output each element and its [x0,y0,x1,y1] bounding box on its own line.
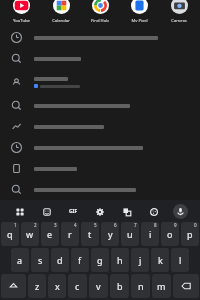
button[interactable]: l [171,248,189,272]
staticText: u [127,228,133,240]
staticText: d [57,254,63,266]
staticText: o [167,228,173,240]
staticText: GIF [69,208,78,215]
staticText: b [117,280,123,292]
staticText: YouTube [13,18,30,22]
staticText: My Pixel [131,18,148,22]
button[interactable]: Theme [146,204,161,219]
button[interactable]: Voice input [173,204,188,219]
staticText: v [96,280,101,292]
button[interactable]: x [48,274,66,298]
staticText: Camera [171,18,187,22]
staticText: 0 [194,222,197,228]
button[interactable]: Camera [161,0,197,22]
staticText: a [17,254,23,266]
staticText: w [26,228,34,240]
button[interactable]: s [31,248,49,272]
button[interactable] [0,179,200,200]
button[interactable]: y [101,222,119,246]
button[interactable]: w [21,222,39,246]
staticText: Calendar [52,18,70,22]
staticText: q [7,228,13,240]
staticText: n [138,280,144,292]
button[interactable]: h [111,248,129,272]
button[interactable]: d [51,248,69,272]
staticText: 2 [34,222,37,228]
button[interactable]: Translate [119,204,134,219]
staticText: z [35,280,40,292]
button[interactable]: p [181,222,199,246]
staticText: y [108,228,113,240]
staticText: i [149,228,152,240]
button[interactable]: r [61,222,79,246]
button[interactable] [0,116,200,137]
staticText: c [75,280,80,292]
staticText: 6 [114,222,117,228]
button[interactable]: GIF [66,204,80,218]
button[interactable]: Find Hub [82,0,118,22]
button[interactable]: My Pixel [121,0,157,22]
button[interactable] [0,158,200,179]
button[interactable]: a [11,248,29,272]
button[interactable]: t [81,222,99,246]
staticText: 3 [54,222,57,228]
button[interactable]: b [110,274,129,298]
button[interactable]: u [121,222,139,246]
staticText: l [179,254,182,266]
staticText: 4 [74,222,77,228]
staticText: k [158,254,163,266]
button[interactable] [0,48,200,69]
staticText: p [187,228,193,240]
button[interactable]: YouTube [3,0,39,22]
staticText: e [47,228,53,240]
button[interactable]: Apps [12,204,27,219]
button[interactable]: j [131,248,149,272]
button[interactable]: Stickers [39,204,54,219]
button[interactable]: Settings [92,204,107,219]
button[interactable]: e [41,222,59,246]
staticText: x [55,280,60,292]
button[interactable] [0,69,200,95]
staticText: 8 [154,222,157,228]
button[interactable]: Backspace [173,274,199,298]
button[interactable]: m [152,274,171,298]
button[interactable]: v [89,274,108,298]
button[interactable]: g [91,248,109,272]
button[interactable]: i [141,222,159,246]
button[interactable]: c [68,274,87,298]
button[interactable]: q [1,222,19,246]
staticText: s [38,254,43,266]
staticText: f [78,254,82,266]
staticText: g [97,254,103,266]
button[interactable]: o [161,222,179,246]
staticText: t [88,228,92,240]
staticText: r [68,228,72,240]
staticText: Find Hub [91,18,109,22]
button[interactable]: z [28,274,46,298]
button[interactable]: k [151,248,169,272]
button[interactable]: Calendar [43,0,79,22]
staticText: 9 [174,222,177,228]
staticText: h [117,254,123,266]
staticText: j [139,254,142,266]
button[interactable]: n [131,274,150,298]
button[interactable]: Shift [1,274,26,298]
button[interactable]: f [71,248,89,272]
button[interactable] [0,27,200,48]
staticText: m [157,280,166,292]
staticText: 5 [94,222,97,228]
button[interactable] [0,137,200,158]
staticText: 1 [14,222,17,228]
button[interactable] [0,95,200,116]
staticText: 7 [134,222,137,228]
